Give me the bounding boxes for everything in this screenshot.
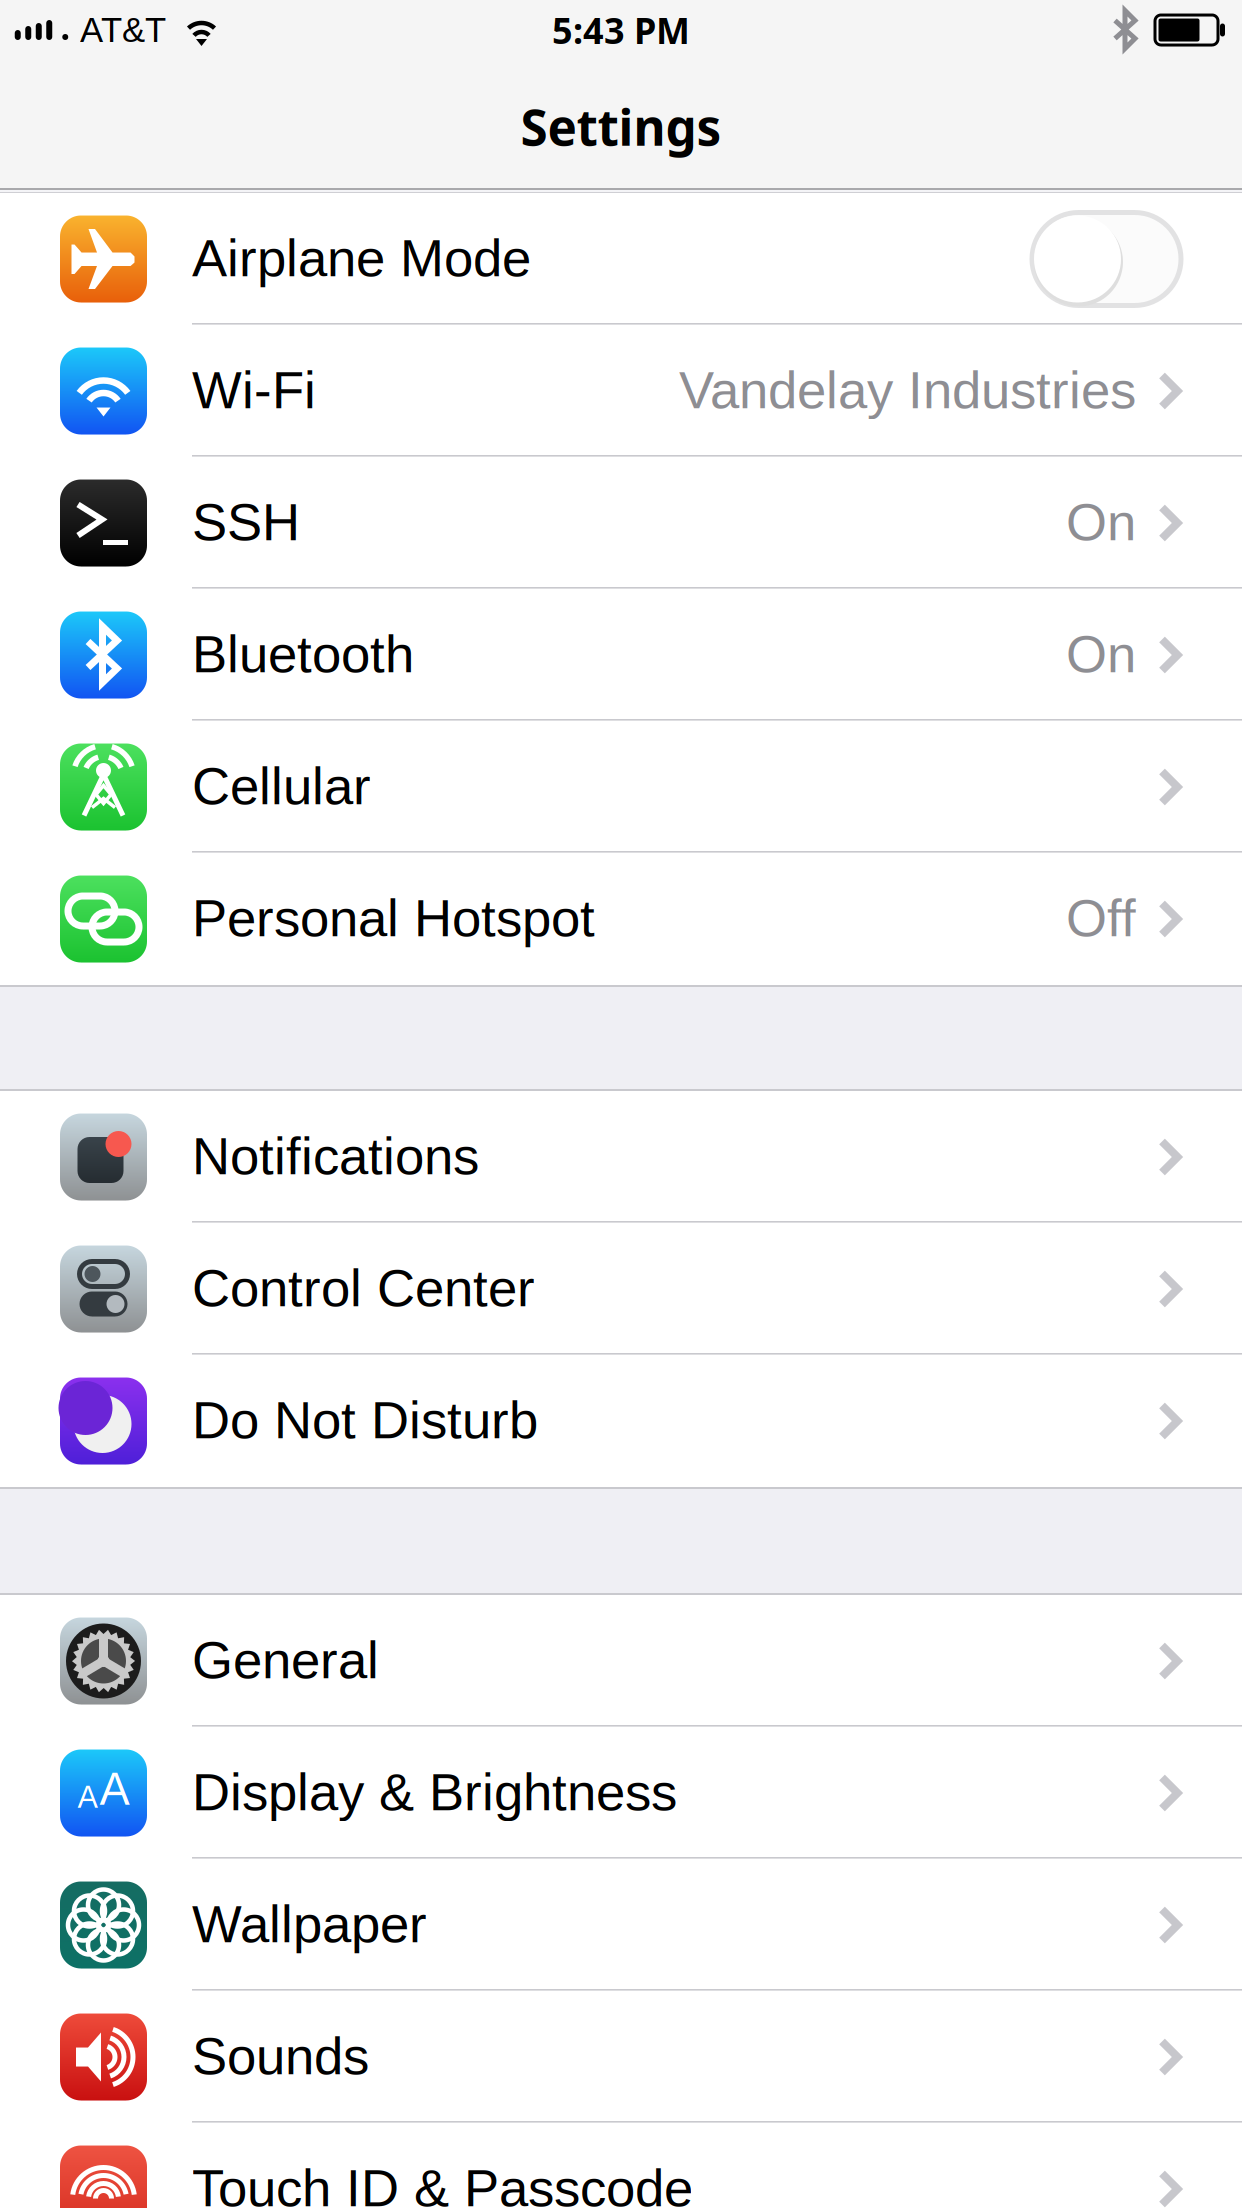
staticText: Personal Hotspot [192, 889, 595, 947]
button[interactable]: Bluetooth [0, 589, 1242, 721]
button[interactable]: Wallpaper [0, 1859, 1242, 1991]
staticText: SSH [192, 493, 300, 551]
staticText: General [192, 1631, 379, 1689]
staticText: Do Not Disturb [192, 1391, 538, 1449]
staticText: On [1066, 493, 1136, 551]
button[interactable]: Wi-Fi [0, 325, 1242, 457]
staticText: Off [1066, 889, 1136, 947]
button[interactable]: Control Center [0, 1223, 1242, 1355]
staticText: Wi-Fi [192, 361, 316, 419]
staticText: Wallpaper [192, 1895, 427, 1953]
button[interactable]: General [0, 1595, 1242, 1727]
staticText: Bluetooth [192, 625, 414, 683]
staticText: A [99, 1764, 129, 1814]
staticText: Control Center [192, 1259, 535, 1317]
staticText: On [1066, 625, 1136, 683]
staticText: Notifications [192, 1127, 479, 1185]
button[interactable]: Airplane Mode [0, 193, 1242, 325]
button[interactable]: Touch ID & Passcode [0, 2123, 1242, 2208]
staticText: Touch ID & Passcode [192, 2159, 693, 2208]
staticText: Vandelay Industries [679, 361, 1136, 419]
staticText: Display & Brightness [192, 1763, 677, 1821]
staticText: Cellular [192, 757, 371, 815]
button[interactable]: SSH [0, 457, 1242, 589]
staticText: A [77, 1780, 97, 1814]
button[interactable]: Personal Hotspot [0, 853, 1242, 985]
button[interactable]: Do Not Disturb [0, 1355, 1242, 1487]
staticText: 5:43 PM [552, 5, 690, 54]
staticText: Settings [520, 93, 721, 160]
staticText: AT&T [80, 11, 166, 49]
button[interactable]: Notifications [0, 1091, 1242, 1223]
button[interactable]: A [0, 1727, 1242, 1859]
button[interactable]: Sounds [0, 1991, 1242, 2123]
staticText: Sounds [192, 2027, 369, 2085]
button[interactable]: Cellular [0, 721, 1242, 853]
staticText: Airplane Mode [192, 229, 531, 287]
